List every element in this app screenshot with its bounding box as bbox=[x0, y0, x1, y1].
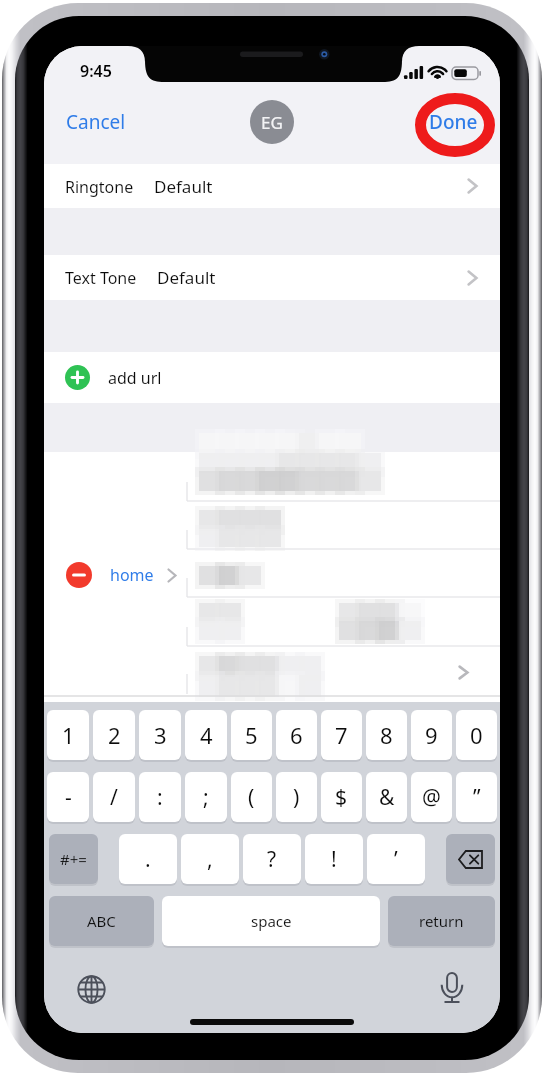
staticText: ( bbox=[248, 783, 255, 812]
staticText: ; bbox=[203, 783, 209, 812]
staticText: return bbox=[419, 911, 464, 931]
staticText: , bbox=[207, 845, 213, 874]
button[interactable]: ” bbox=[456, 772, 497, 822]
button[interactable]: Change keyboard bbox=[74, 972, 108, 1006]
staticText: EG bbox=[261, 111, 283, 134]
staticText: 6 bbox=[290, 720, 303, 750]
button[interactable]: . bbox=[119, 834, 177, 884]
staticText: 9 bbox=[425, 720, 438, 750]
button[interactable]: ’ bbox=[367, 834, 425, 884]
staticText: & bbox=[379, 783, 395, 812]
button[interactable]: space bbox=[162, 896, 380, 946]
button[interactable]: Dictate bbox=[435, 971, 469, 1005]
staticText: 0 bbox=[470, 720, 483, 750]
staticText: ’ bbox=[394, 845, 398, 874]
button[interactable]: #+= bbox=[49, 834, 98, 884]
staticText: #+= bbox=[60, 849, 87, 869]
button[interactable]: 5 bbox=[231, 710, 272, 760]
staticText: ! bbox=[331, 845, 337, 874]
button[interactable]: & bbox=[366, 772, 407, 822]
button[interactable]: ) bbox=[276, 772, 317, 822]
staticText: $ bbox=[335, 783, 348, 812]
staticText: Default bbox=[157, 266, 216, 289]
staticText: 1 bbox=[62, 720, 75, 750]
button[interactable]: 8 bbox=[366, 710, 407, 760]
staticText: / bbox=[110, 783, 118, 812]
button[interactable]: / bbox=[93, 772, 135, 822]
button[interactable]: ; bbox=[185, 772, 227, 822]
button[interactable]: 1 bbox=[47, 710, 89, 760]
button[interactable]: EG bbox=[250, 100, 294, 144]
button[interactable]: ( bbox=[231, 772, 272, 822]
button[interactable]: 9 bbox=[411, 710, 452, 760]
staticText: 4 bbox=[200, 720, 213, 750]
staticText: Done bbox=[429, 109, 478, 135]
button[interactable]: - bbox=[47, 772, 89, 822]
staticText: . bbox=[145, 845, 151, 874]
button[interactable]: ! bbox=[305, 834, 363, 884]
button[interactable] bbox=[446, 834, 495, 884]
staticText: space bbox=[251, 911, 292, 931]
staticText: ? bbox=[267, 845, 277, 874]
staticText: Default bbox=[154, 175, 213, 198]
staticText: ABC bbox=[87, 911, 116, 931]
button[interactable]: : bbox=[139, 772, 181, 822]
staticText: Cancel bbox=[66, 109, 126, 135]
staticText: 2 bbox=[108, 720, 121, 750]
button[interactable]: Text Tone bbox=[44, 255, 500, 300]
staticText: ) bbox=[293, 783, 300, 812]
other: Backspace bbox=[446, 834, 495, 885]
button[interactable]: return bbox=[388, 896, 495, 946]
staticText: Ringtone bbox=[65, 176, 134, 198]
button[interactable]: @ bbox=[411, 772, 452, 822]
staticText: 9:45 bbox=[80, 60, 112, 82]
staticText: @ bbox=[422, 783, 441, 812]
staticText: Text Tone bbox=[65, 267, 137, 289]
button[interactable]: home bbox=[110, 564, 154, 586]
button[interactable]: Cancel bbox=[54, 103, 138, 141]
staticText: : bbox=[157, 783, 163, 812]
button[interactable]: ? bbox=[243, 834, 301, 884]
button[interactable]: 3 bbox=[139, 710, 181, 760]
button[interactable]: , bbox=[181, 834, 239, 884]
staticText: - bbox=[65, 783, 72, 812]
staticText: 5 bbox=[245, 720, 258, 750]
button[interactable]: ABC bbox=[49, 896, 154, 946]
button[interactable]: 4 bbox=[185, 710, 227, 760]
button[interactable]: 6 bbox=[276, 710, 317, 760]
staticText: ” bbox=[473, 783, 481, 812]
staticText: add url bbox=[108, 367, 162, 389]
button[interactable]: 7 bbox=[321, 710, 362, 760]
button[interactable]: add url bbox=[44, 352, 500, 403]
staticText: 8 bbox=[380, 720, 393, 750]
button[interactable]: Remove bbox=[66, 562, 92, 588]
button[interactable]: $ bbox=[321, 772, 362, 822]
button[interactable]: 0 bbox=[456, 710, 497, 760]
staticText: 3 bbox=[154, 720, 167, 750]
button[interactable]: 2 bbox=[93, 710, 135, 760]
staticText: 7 bbox=[335, 720, 348, 750]
button[interactable]: Done bbox=[422, 103, 485, 141]
button[interactable]: Ringtone bbox=[44, 164, 500, 208]
